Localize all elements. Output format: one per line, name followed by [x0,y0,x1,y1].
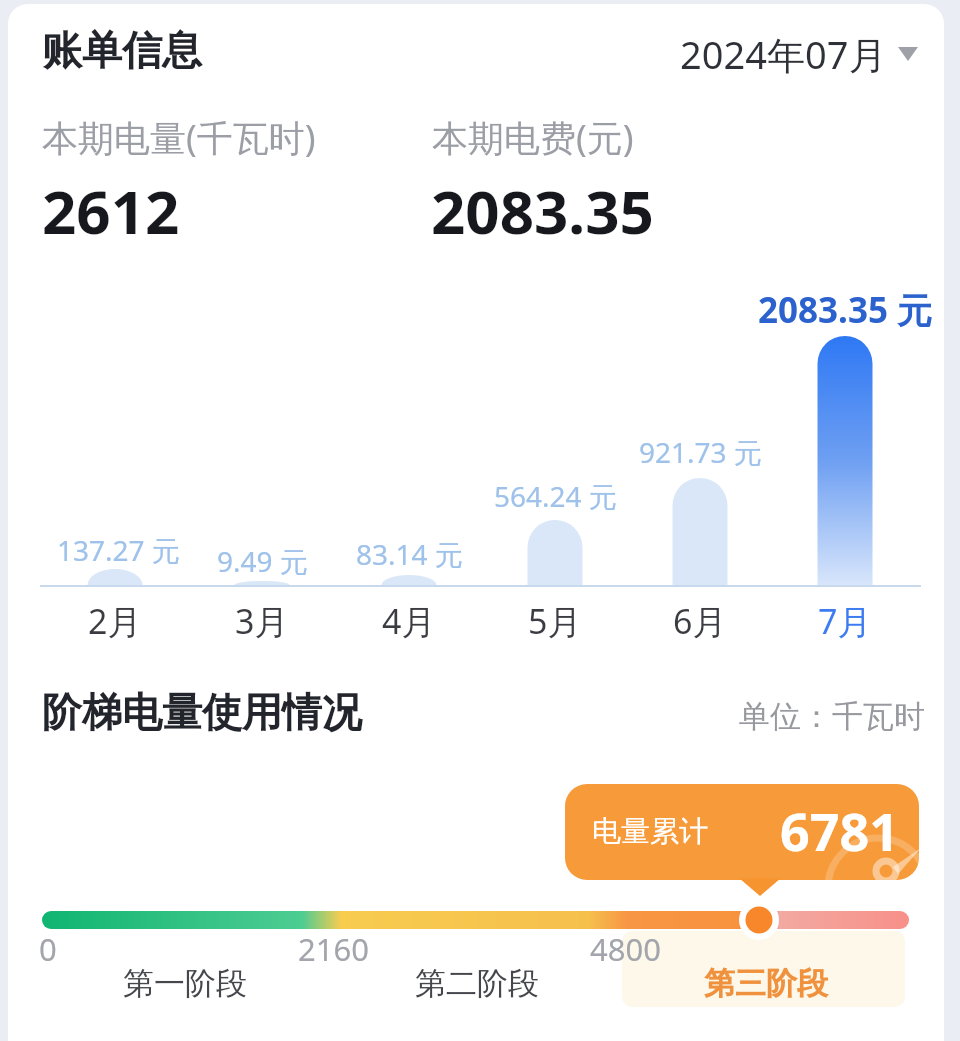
staticText: 2024年07月 [680,28,887,80]
staticText: 第二阶段 [415,964,539,1003]
staticText: 第一阶段 [123,964,247,1003]
staticText: 9.49 元 [217,542,308,580]
staticText: 5月 [528,598,582,644]
staticText: 3月 [235,598,289,644]
staticText: 6月 [673,598,727,644]
staticText: 137.27 元 [57,531,180,569]
staticText: 83.14 元 [356,535,463,573]
staticText: 564.24 元 [494,477,617,515]
staticText: 7月 [818,598,872,644]
staticText: 2160 [298,928,369,970]
staticText: 2083.35 元 [758,286,933,334]
staticText: 第三阶段 [704,964,828,1003]
staticText: 0 [39,928,57,970]
staticText: 本期电费(元) [432,113,634,162]
staticText: 4月 [382,598,436,644]
staticText: 2612 [42,170,180,252]
staticText: 本期电量(千瓦时) [42,113,316,162]
staticText: 电量累计 [592,813,708,850]
staticText: 4800 [590,928,661,970]
staticText: 2083.35 [431,170,654,252]
staticText: 921.73 元 [639,433,762,471]
staticText: 2月 [88,598,142,644]
staticText: 单位：千瓦时 [739,697,925,736]
staticText: 阶梯电量使用情况 [42,687,362,737]
staticText: 6781 [780,795,899,866]
staticText: 账单信息 [42,25,202,75]
